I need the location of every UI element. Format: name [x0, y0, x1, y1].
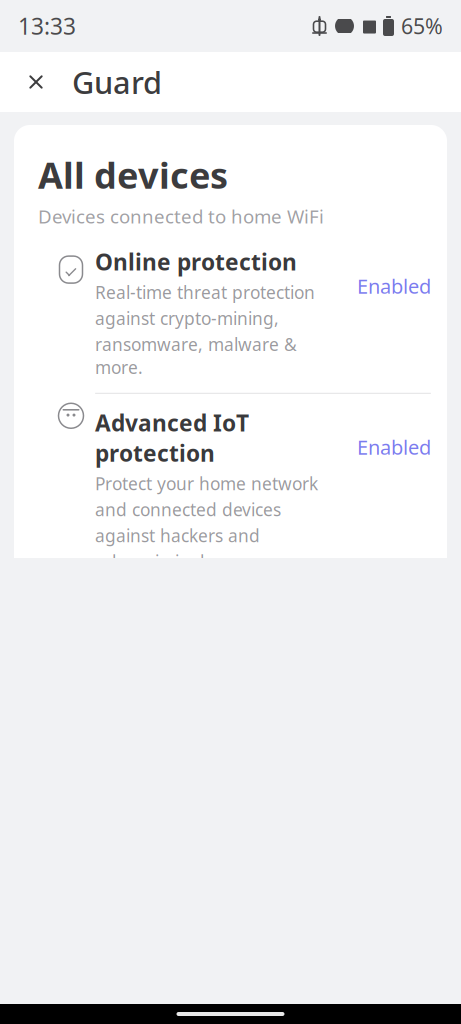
- staticText: Online protection: [95, 247, 297, 277]
- staticText: Guard: [72, 62, 162, 102]
- staticText: Enabled: [357, 434, 431, 460]
- staticText: 65%: [401, 12, 443, 40]
- staticText: Real-time threat protection: [95, 281, 315, 304]
- staticText: against hackers and: [95, 524, 260, 547]
- button[interactable]: Delete Guard events: [14, 946, 447, 1014]
- staticText: ransomware, malware & more.: [95, 333, 297, 379]
- staticText: All devices: [38, 151, 228, 199]
- staticText: against crypto-mining,: [95, 307, 279, 330]
- button[interactable]: Online protection: [14, 229, 447, 393]
- staticText: Protect your home network: [95, 472, 318, 495]
- staticText: and connected devices: [95, 498, 281, 521]
- staticText: Devices connected to home WiFi: [38, 204, 324, 229]
- button[interactable]: Advanced IoT protection: [14, 393, 447, 587]
- staticText: Enabled: [357, 273, 431, 299]
- staticText: Advanced IoT protection: [95, 408, 249, 468]
- button[interactable]: Close: [14, 60, 58, 104]
- staticText: 13:33: [18, 11, 76, 41]
- staticText: cybercriminals.: [95, 550, 217, 573]
